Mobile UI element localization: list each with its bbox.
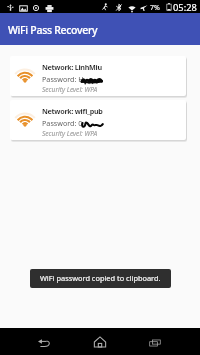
button[interactable]: WiFi password copied to clipboard. [30, 269, 171, 288]
staticText: Network: LinhMiu [42, 62, 102, 72]
staticText: Password: H [42, 74, 84, 84]
staticText: Network: wifi_pub [42, 106, 103, 116]
button[interactable]: Network: LinhMiu [10, 56, 186, 96]
staticText: 05:28 [173, 1, 197, 14]
button[interactable]: Network: wifi_pub [10, 100, 186, 140]
button[interactable]: Home [87, 331, 113, 353]
staticText: WiFi Pass Recovery [8, 23, 98, 37]
button[interactable]: Back [31, 332, 57, 354]
staticText: Security Level: WPA [42, 85, 98, 94]
staticText: WiFi password copied to clipboard. [40, 273, 161, 283]
button[interactable]: WiFi Pass Recovery [0, 13, 200, 45]
staticText: 7% [150, 3, 160, 13]
staticText: Password: 0 [42, 118, 83, 128]
staticText: Security Level: WPA [42, 129, 98, 138]
button[interactable]: Recent apps [142, 332, 168, 354]
